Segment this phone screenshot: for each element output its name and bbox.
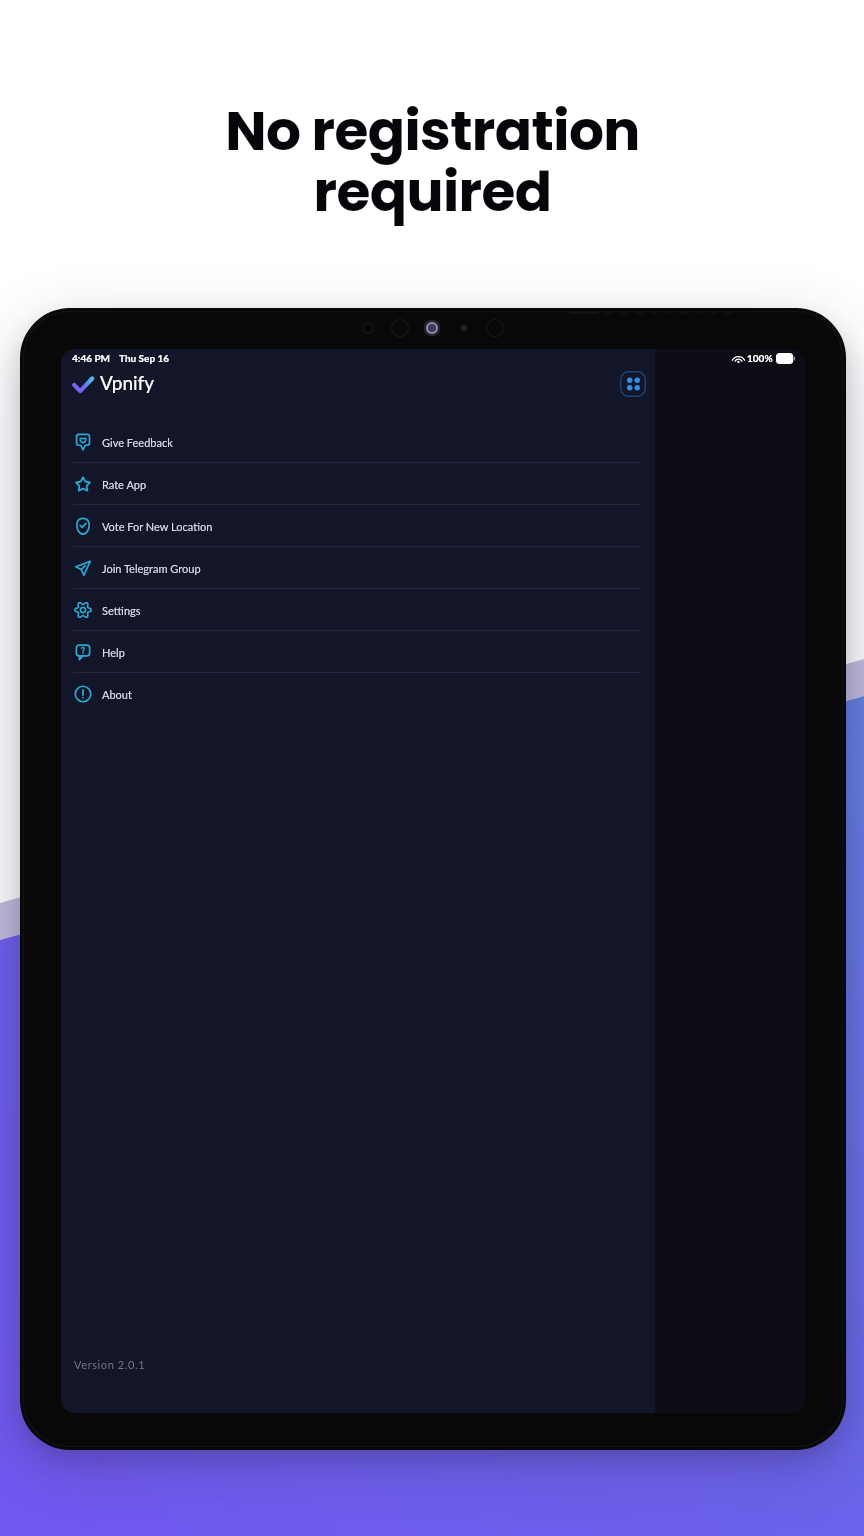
button[interactable]: Rate App — [61, 463, 805, 505]
staticText: Vote For New Location — [102, 520, 213, 533]
staticText: 4:46 PM — [72, 352, 111, 364]
button[interactable]: Apps — [620, 371, 646, 397]
button[interactable]: Help — [61, 631, 805, 673]
staticText: Help — [102, 646, 125, 659]
button[interactable]: Give Feedback — [61, 421, 805, 463]
staticText: 100% — [747, 352, 773, 364]
staticText: Settings — [102, 604, 141, 617]
staticText: About — [102, 688, 132, 701]
staticText: Thu Sep 16 — [119, 352, 170, 364]
button[interactable]: Join Telegram Group — [61, 547, 805, 589]
staticText: Join Telegram Group — [102, 562, 201, 575]
staticText: Give Feedback — [102, 436, 173, 449]
staticText: Version 2.0.1 — [74, 1358, 146, 1371]
button[interactable]: Settings — [61, 589, 805, 631]
staticText: No registration required — [225, 92, 640, 230]
staticText: Vpnify — [100, 371, 155, 394]
button[interactable]: About — [61, 673, 805, 715]
button[interactable]: Vote For New Location — [61, 505, 805, 547]
staticText: Rate App — [102, 478, 147, 491]
